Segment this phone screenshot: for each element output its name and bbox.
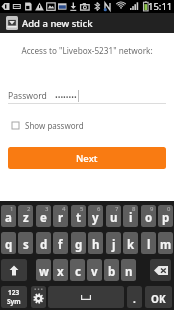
button[interactable]: u (106, 205, 121, 227)
staticText: 8 (132, 205, 136, 213)
staticText: r (58, 210, 64, 226)
button[interactable]: Symbols (1, 286, 27, 308)
staticText: o (145, 210, 153, 226)
staticText: e (40, 210, 47, 226)
staticText: b (108, 264, 116, 280)
staticText: w (39, 264, 49, 280)
button[interactable]: Settings (31, 286, 46, 308)
staticText: 15:11 (148, 0, 173, 13)
button[interactable]: Shift (1, 259, 27, 281)
button[interactable]: Space (48, 286, 124, 308)
staticText: Add a new stick (22, 17, 93, 30)
staticText: Sym (7, 297, 21, 306)
button[interactable]: d (36, 232, 51, 254)
staticText: s (23, 237, 29, 253)
button[interactable]: l (141, 232, 156, 254)
button[interactable]: h (88, 232, 103, 254)
staticText: 1 (10, 205, 14, 213)
staticText: Access to "Livebox-5231" network: (0, 45, 174, 56)
staticText: •••••••• (55, 92, 77, 102)
staticText: 4 (62, 205, 66, 213)
button[interactable]: c (70, 259, 85, 281)
button[interactable]: OK (145, 286, 172, 308)
staticText: g (75, 237, 83, 253)
button[interactable]: e (36, 205, 51, 227)
staticText: . (133, 292, 136, 306)
button[interactable]: x (53, 259, 68, 281)
button[interactable]: r (53, 205, 68, 227)
staticText: Password (8, 90, 47, 102)
staticText: a (5, 210, 12, 226)
staticText: i (129, 210, 133, 226)
button[interactable]: p (158, 205, 173, 227)
staticText: 5 (80, 205, 84, 213)
button[interactable]: b (104, 259, 119, 281)
staticText: h (92, 237, 100, 253)
staticText: c (75, 264, 81, 280)
button[interactable]: f (53, 232, 68, 254)
staticText: z (23, 210, 29, 226)
button[interactable]: Next (8, 147, 166, 169)
staticText: u (110, 210, 118, 226)
staticText: l (147, 237, 151, 253)
staticText: OK (151, 292, 166, 306)
staticText: 0 (167, 205, 171, 213)
staticText: n (125, 264, 133, 280)
button[interactable]: n (121, 259, 136, 281)
staticText: q (5, 237, 13, 253)
button[interactable]: z (18, 205, 33, 227)
staticText: k (127, 237, 135, 253)
staticText: f (58, 237, 63, 253)
button[interactable]: Add a new stick (0, 13, 174, 33)
button[interactable]: i (123, 205, 138, 227)
button[interactable]: t (71, 205, 86, 227)
staticText: Show password (25, 120, 84, 131)
button[interactable]: y (88, 205, 103, 227)
staticText: Next (76, 152, 98, 165)
button[interactable]: m (158, 232, 173, 254)
staticText: 6 (97, 205, 101, 213)
button[interactable]: k (123, 232, 138, 254)
staticText: j (112, 237, 116, 253)
staticText: v (91, 264, 98, 280)
staticText: x (57, 264, 64, 280)
staticText: d (40, 237, 48, 253)
button[interactable]: q (1, 232, 16, 254)
button[interactable]: a (1, 205, 16, 227)
staticText: y (92, 210, 99, 226)
staticText: m (160, 237, 172, 253)
staticText: 123 (8, 288, 20, 297)
button[interactable]: o (141, 205, 156, 227)
button[interactable]: w (36, 259, 51, 281)
button[interactable]: Show password (10, 118, 86, 133)
staticText: 2 (27, 205, 31, 213)
button[interactable]: j (106, 232, 121, 254)
button[interactable]: v (87, 259, 102, 281)
button[interactable]: s (18, 232, 33, 254)
button[interactable]: Backspace (150, 259, 171, 281)
staticText: p (162, 210, 170, 226)
button[interactable]: . (127, 286, 142, 308)
staticText: 9 (150, 205, 154, 213)
button[interactable]: g (71, 232, 86, 254)
staticText: t (76, 210, 81, 226)
staticText: 3 (45, 205, 49, 213)
staticText: 7 (115, 205, 119, 213)
